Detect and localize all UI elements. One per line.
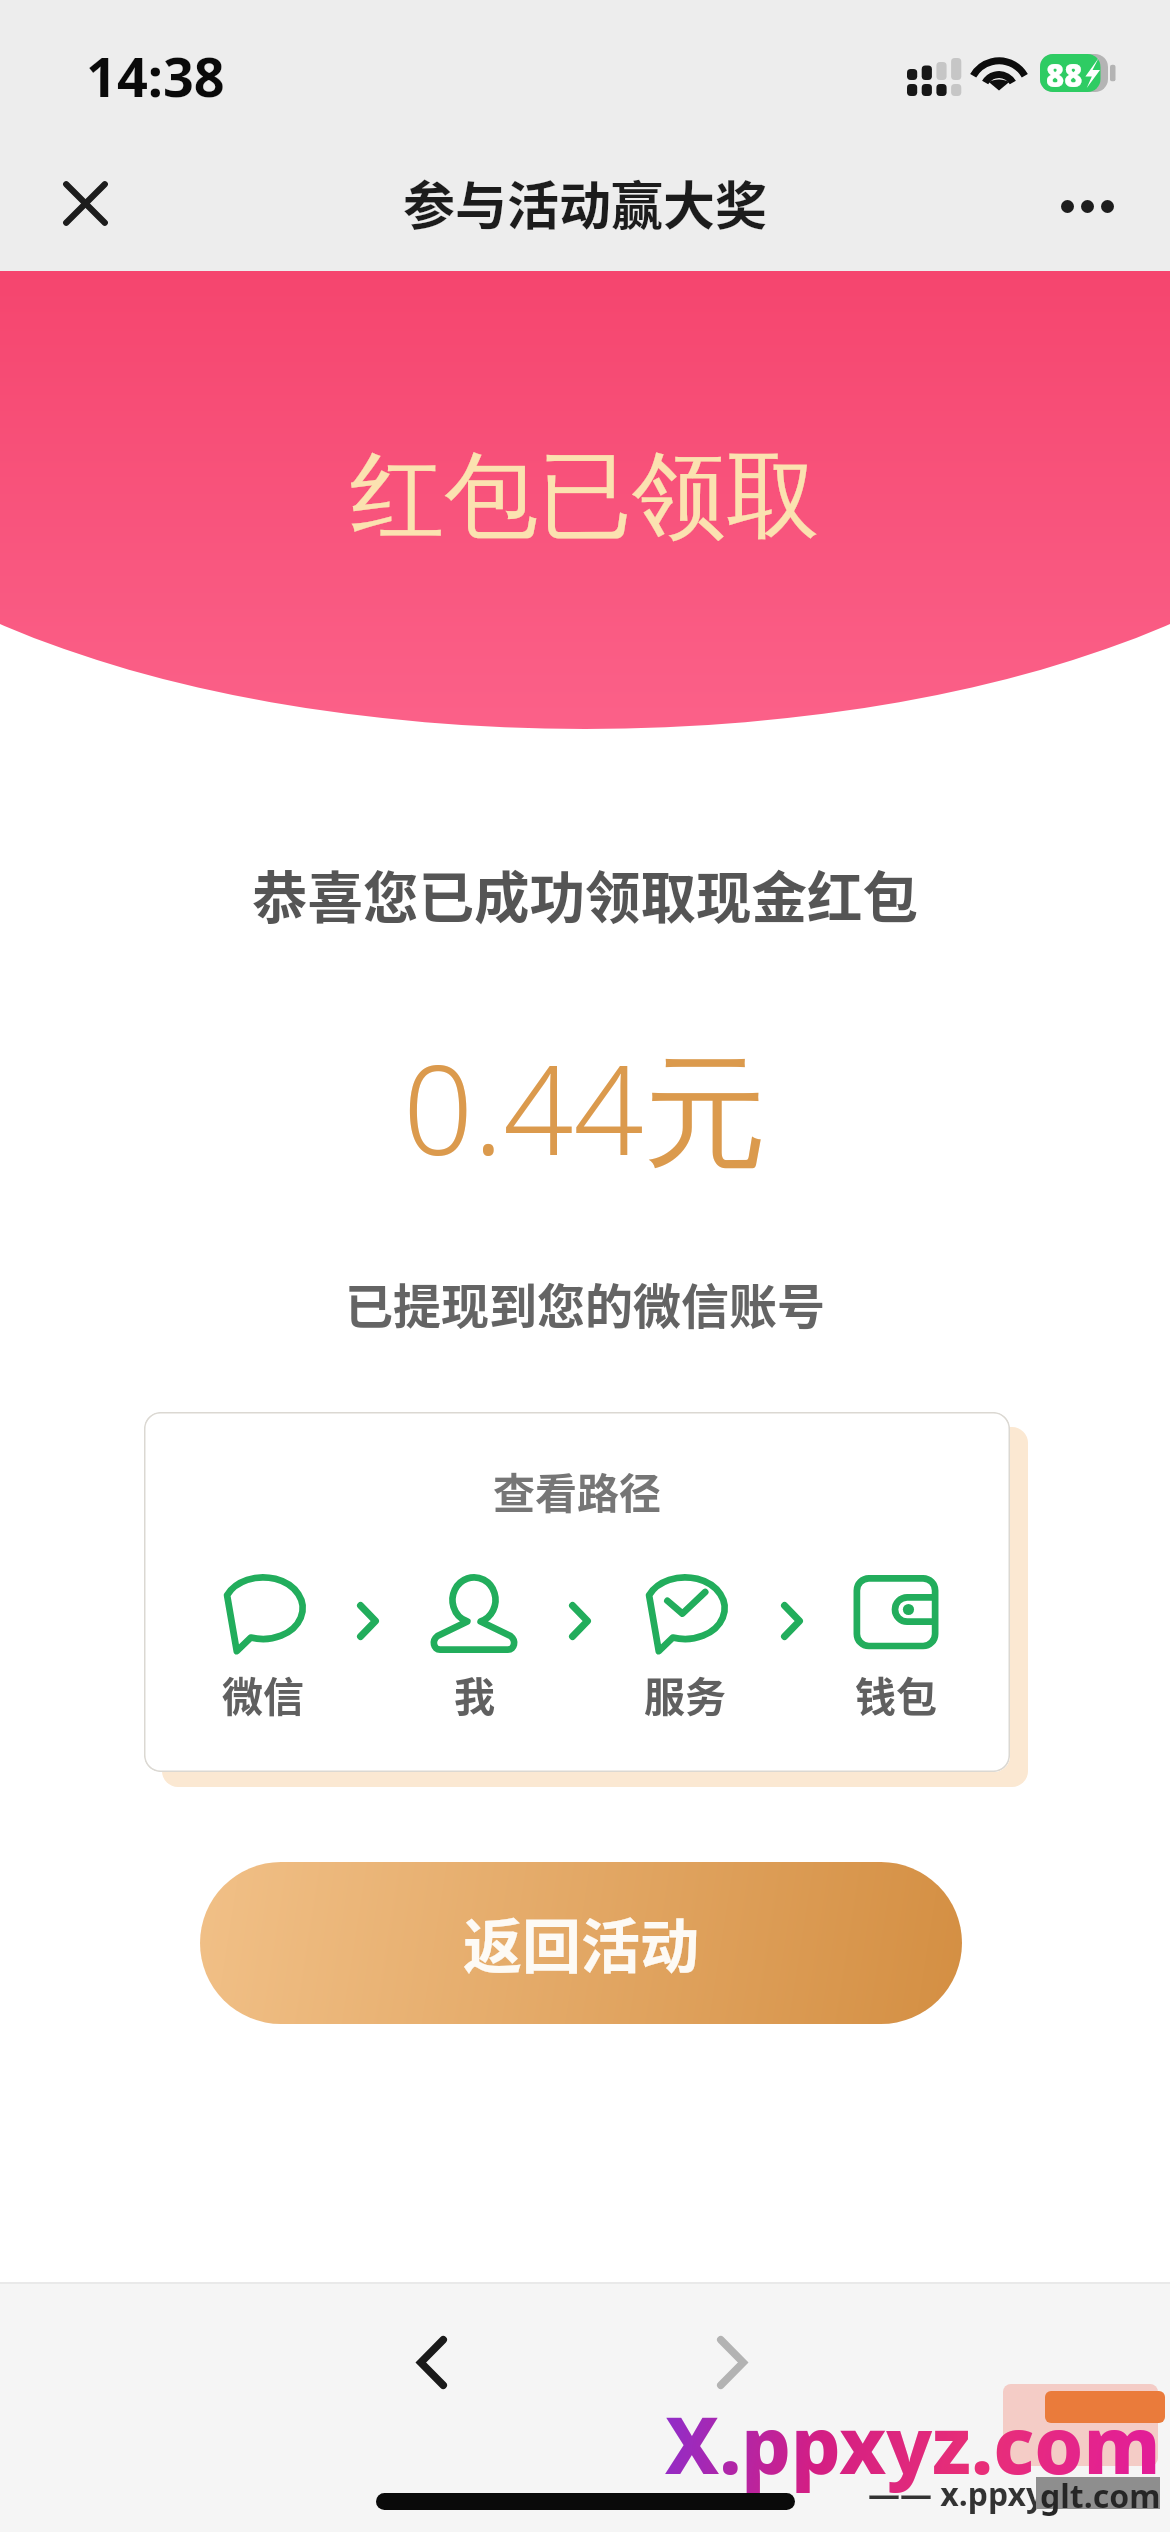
staticText: 恭喜您已成功领取现金红包 — [252, 854, 919, 934]
staticText: X.ppxyz.com — [665, 2391, 1161, 2497]
staticText: 14:38 — [86, 39, 225, 113]
staticText: 服务 — [644, 1664, 726, 1723]
button[interactable]: 服务 — [625, 1574, 745, 1723]
staticText: 已提现到您的微信账号 — [345, 1268, 826, 1338]
button[interactable]: 微信 — [203, 1574, 323, 1723]
button[interactable]: More options — [1028, 135, 1146, 271]
button[interactable]: 查看路径 — [144, 1412, 1010, 1772]
staticText: 钱包 — [855, 1664, 937, 1723]
staticText: 参与活动赢大奖 — [403, 165, 768, 240]
staticText: 我 — [454, 1664, 495, 1723]
button[interactable]: 返回活动 — [200, 1862, 962, 2024]
staticText: 0.44元 — [403, 1024, 767, 1192]
staticText: glt.com — [1040, 2474, 1161, 2518]
button[interactable]: Close — [20, 135, 150, 271]
staticText: 返回活动 — [463, 1900, 700, 1985]
button[interactable]: 我 — [414, 1574, 534, 1723]
staticText: —— x.ppxyz.com — [868, 2472, 1137, 2516]
button[interactable]: 钱包 — [836, 1574, 956, 1723]
button[interactable]: Forward — [673, 2306, 791, 2418]
staticText: 88 — [1046, 54, 1083, 92]
button[interactable]: Back — [373, 2306, 491, 2418]
staticText: 红包已领取 — [350, 437, 820, 555]
staticText: 查看路径 — [493, 1460, 662, 1521]
staticText: 微信 — [222, 1664, 304, 1723]
